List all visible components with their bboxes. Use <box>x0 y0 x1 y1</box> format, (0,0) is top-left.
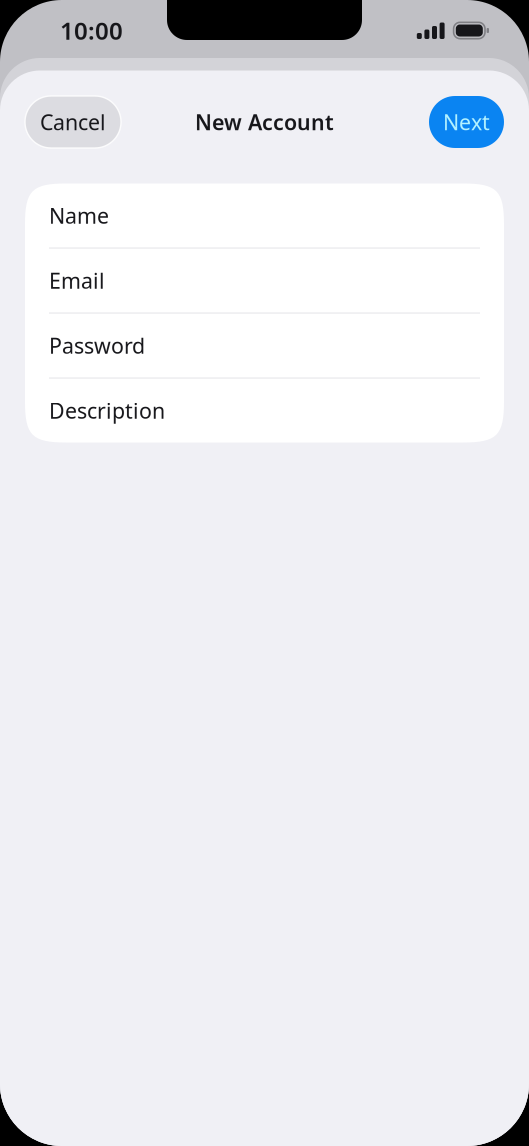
button[interactable]: Email <box>25 248 504 312</box>
staticText: 10:00 <box>60 15 123 46</box>
staticText: New Account <box>195 108 334 136</box>
staticText: Next <box>443 108 490 136</box>
staticText: Cancel <box>40 108 106 136</box>
button[interactable]: Name <box>25 183 504 247</box>
button[interactable]: Description <box>25 378 504 442</box>
button[interactable]: Cancel <box>25 96 121 148</box>
button[interactable]: Next <box>429 96 504 148</box>
staticText: Description <box>49 396 165 425</box>
staticText: Email <box>49 266 105 295</box>
staticText: Name <box>49 201 109 230</box>
button[interactable]: Password <box>25 313 504 377</box>
staticText: Password <box>49 331 145 360</box>
